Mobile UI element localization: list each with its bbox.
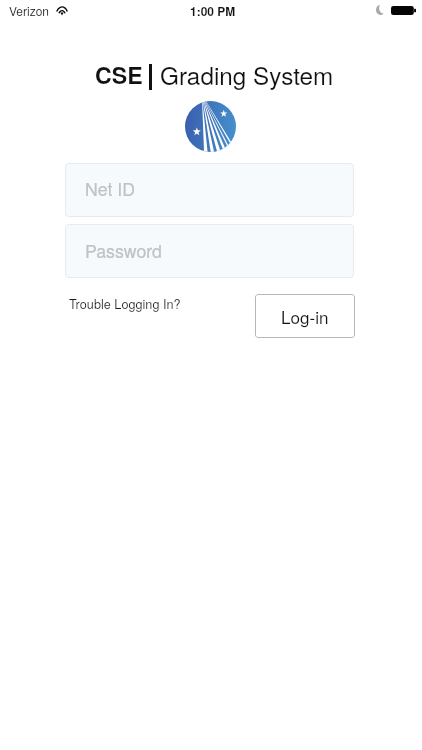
staticText: Log-in — [281, 304, 329, 328]
button[interactable]: Password — [65, 224, 354, 278]
staticText: CSE — [95, 58, 143, 91]
staticText: Net ID — [85, 176, 135, 201]
button[interactable]: Net ID — [65, 163, 354, 217]
other: Wi-Fi — [56, 6, 68, 15]
other: Do not disturb — [376, 5, 385, 15]
staticText: Grading System — [160, 57, 334, 92]
staticText: 1:00 PM — [190, 2, 236, 19]
staticText: Verizon — [9, 2, 50, 19]
staticText: Trouble Logging In? — [69, 294, 181, 312]
other: University logo — [185, 101, 236, 152]
other: Battery full — [391, 6, 416, 15]
button[interactable]: Log-in — [255, 294, 355, 338]
button[interactable]: Trouble Logging In? — [69, 294, 181, 312]
staticText: Password — [85, 238, 162, 263]
